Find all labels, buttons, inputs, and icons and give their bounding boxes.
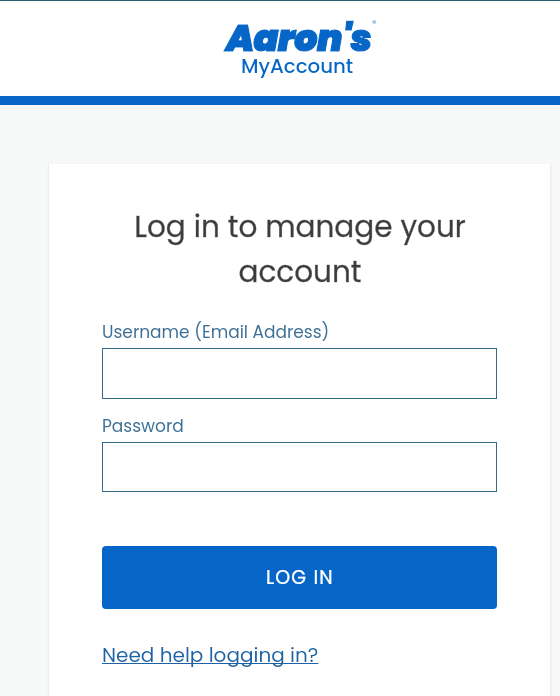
staticText: MyAccount [241, 52, 354, 80]
button[interactable]: Aaron's home [21, 13, 560, 64]
button[interactable]: Username (Email Address) input [102, 348, 497, 399]
staticText: LOG IN [266, 564, 334, 591]
staticText: Aaron's [226, 13, 372, 64]
staticText: Log in to manage your account [120, 206, 480, 292]
staticText: Password [102, 414, 184, 438]
button[interactable]: Need help logging in? [102, 641, 319, 669]
staticText: Need help logging in? [102, 641, 319, 669]
button[interactable]: LOG IN [102, 546, 497, 609]
button[interactable]: Password input [102, 442, 497, 492]
staticText: Username (Email Address) [102, 320, 330, 344]
staticText: ® [372, 17, 377, 30]
staticText: Log in to manage your account [120, 206, 480, 292]
staticText: Aaron's [226, 13, 372, 64]
